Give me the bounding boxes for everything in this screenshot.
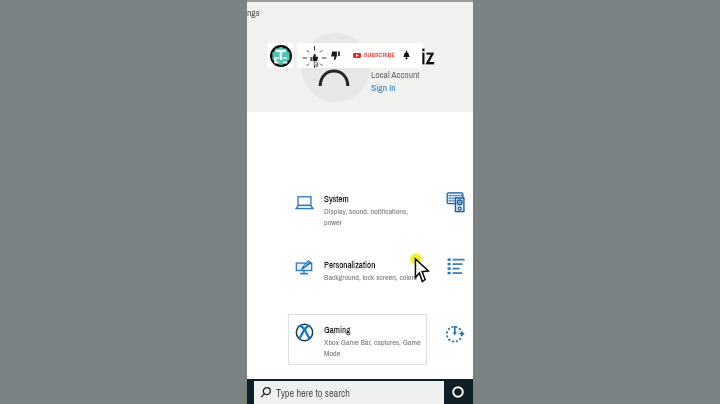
button[interactable] bbox=[288, 253, 423, 293]
staticText: System bbox=[324, 193, 349, 205]
staticText: Background, lock screen, colors bbox=[324, 272, 417, 283]
staticText: Sign In bbox=[371, 81, 396, 93]
other: Search bbox=[260, 387, 271, 398]
button[interactable]: Apps bbox=[447, 257, 465, 276]
button[interactable]: Search bbox=[254, 381, 444, 404]
staticText: iz bbox=[421, 42, 435, 70]
button[interactable] bbox=[288, 187, 423, 227]
staticText: Type here to search bbox=[276, 386, 350, 400]
button[interactable] bbox=[288, 314, 427, 365]
staticText: Xbox Game Bar, captures, Game Mode bbox=[324, 337, 421, 359]
staticText: Gaming bbox=[324, 324, 351, 336]
staticText: SUBSCRIBE bbox=[364, 51, 395, 59]
button[interactable]: Notifications bbox=[401, 50, 412, 61]
button[interactable]: Sign In bbox=[371, 81, 399, 93]
button[interactable]: Dislike bbox=[329, 50, 341, 62]
button[interactable]: Channel avatar bbox=[270, 45, 292, 67]
staticText: Local Account bbox=[371, 68, 420, 81]
button[interactable]: Like bbox=[303, 46, 327, 68]
button[interactable]: SUBSCRIBE bbox=[353, 51, 395, 59]
button[interactable]: Cortana bbox=[451, 385, 465, 399]
button[interactable] bbox=[288, 318, 423, 358]
staticText: Personalization bbox=[324, 259, 376, 271]
staticText: Display, sound, notifications, power bbox=[324, 206, 409, 228]
button[interactable]: Devices bbox=[447, 192, 465, 212]
staticText: ngs bbox=[247, 6, 260, 19]
button[interactable]: Update and Security bbox=[447, 323, 464, 341]
